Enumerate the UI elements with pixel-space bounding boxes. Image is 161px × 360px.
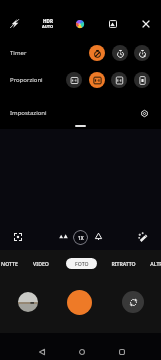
button[interactable]: Scene detection	[54, 227, 73, 246]
button[interactable]: Home	[73, 343, 91, 360]
button[interactable]: VIDEO	[21, 256, 61, 270]
staticText: VIDEO	[33, 260, 49, 267]
button[interactable]: FOTO	[66, 258, 97, 269]
button[interactable]: HDR auto	[38, 14, 58, 32]
button[interactable]: Focus mode	[8, 227, 27, 246]
button[interactable]: Last photo	[18, 292, 38, 312]
button[interactable]: RITRATTO	[103, 256, 143, 270]
button[interactable]: Switch camera	[122, 291, 144, 313]
button[interactable]: Close	[136, 14, 155, 33]
staticText: FOTO	[75, 260, 89, 267]
button[interactable]: Gallery preview	[103, 14, 122, 33]
button[interactable]: Back	[33, 343, 51, 360]
button[interactable]: Aspect ratio 1 to 1	[66, 72, 82, 88]
button[interactable]: Aspect ratio 16 to 9	[111, 72, 127, 88]
staticText: Proporzioni	[10, 76, 43, 84]
staticText: Impostazioni	[10, 109, 47, 117]
button[interactable]: Filters	[133, 227, 152, 246]
staticText: NOTTE	[1, 260, 18, 267]
button[interactable]: Flash mode	[89, 227, 108, 246]
button[interactable]: Full screen ratio	[134, 72, 150, 88]
button[interactable]: Recent apps	[113, 343, 131, 360]
button[interactable]: Take photo	[67, 290, 92, 315]
button[interactable]: NOTTE	[0, 256, 29, 270]
button[interactable]: Timer 10 seconds	[134, 45, 150, 61]
staticText: AUTO	[42, 24, 54, 29]
staticText: 1X	[78, 235, 84, 241]
staticText: ALTRO	[150, 260, 161, 267]
staticText: HDR	[43, 18, 53, 24]
button[interactable]: Aspect ratio 4 to 3	[89, 72, 105, 88]
button[interactable]: Timer 3 seconds	[112, 45, 128, 61]
button[interactable]: Impostazioni	[0, 101, 161, 125]
staticText: RITRATTO	[111, 260, 136, 267]
staticText: Timer	[10, 49, 27, 57]
button[interactable]: AI scene detection	[70, 14, 89, 33]
button[interactable]: Zoom 1X	[73, 230, 88, 245]
button[interactable]: Timer off	[89, 45, 105, 61]
button[interactable]: Flash off	[5, 14, 24, 33]
button[interactable]: ALTRO	[138, 256, 161, 270]
